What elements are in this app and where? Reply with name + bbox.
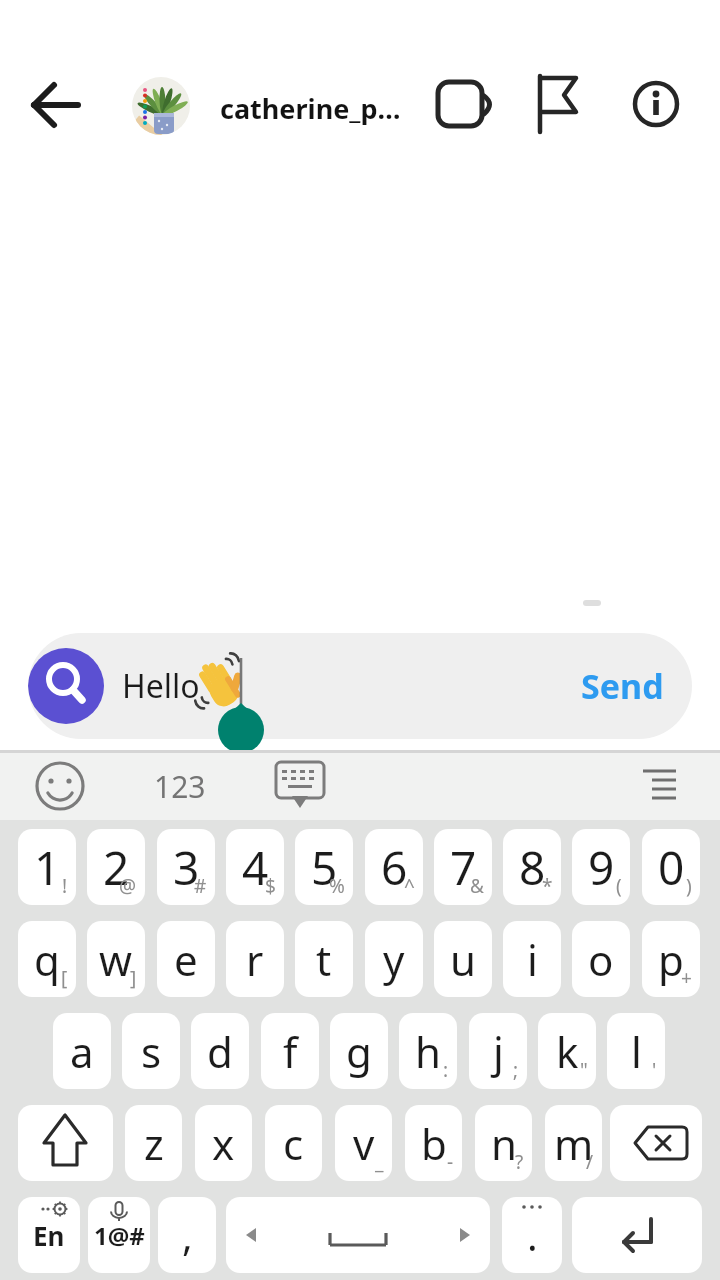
staticText: t [316,931,332,988]
staticText: s [141,1023,162,1080]
button[interactable]: b [405,1105,462,1181]
staticText: g [346,1023,372,1080]
staticText: w [99,931,133,988]
button[interactable]: Hello [28,633,692,739]
staticText: + [681,965,692,991]
button[interactable]: s [122,1013,180,1089]
button[interactable]: En [18,1197,80,1273]
staticText: ! [62,873,68,899]
button[interactable] [626,756,686,816]
button[interactable]: 5 [295,829,353,905]
staticText: b [421,1115,447,1172]
staticText: 3 [173,836,200,899]
staticText: ; [513,1057,519,1083]
staticText: 2 [103,836,130,899]
button[interactable] [32,756,88,816]
staticText: " [580,1057,588,1083]
staticText: 0 [658,836,685,899]
button[interactable] [18,1105,113,1181]
button[interactable]: . [502,1197,562,1273]
button[interactable] [572,1197,702,1273]
button[interactable] [268,756,332,816]
button[interactable]: q [18,921,76,997]
staticText: - [447,1149,454,1175]
button[interactable]: d [191,1013,249,1089]
staticText: En [33,1218,65,1253]
button[interactable]: e [157,921,215,997]
button[interactable]: u [434,921,492,997]
staticText: 1 [34,836,61,899]
staticText: y [383,931,405,988]
staticText: x [212,1115,235,1172]
button[interactable] [28,648,104,724]
button[interactable]: o [572,921,630,997]
button[interactable]: 1@# [88,1197,150,1273]
button[interactable]: f [261,1013,319,1089]
button[interactable]: r [226,921,284,997]
button[interactable]: , [158,1197,216,1273]
button[interactable]: c [265,1105,322,1181]
staticText: 8 [519,836,546,899]
button[interactable]: x [195,1105,252,1181]
staticText: h [415,1023,441,1080]
staticText: [ [61,965,68,991]
button[interactable]: 4 [226,829,284,905]
button[interactable]: y [365,921,423,997]
button[interactable]: 6 [365,829,423,905]
staticText: n [491,1115,517,1172]
staticText: 5 [311,836,338,899]
staticText: / [586,1149,594,1175]
staticText: ( [616,873,622,899]
staticText: _ [375,1149,384,1175]
button[interactable]: h [399,1013,457,1089]
staticText: . [527,1208,538,1262]
button[interactable] [226,1197,490,1273]
staticText: , [182,1208,193,1262]
button[interactable] [630,76,686,132]
staticText: l [631,1023,642,1080]
button[interactable] [430,74,504,138]
button[interactable]: g [330,1013,388,1089]
staticText: ) [686,873,692,899]
staticText: catherine_p… [220,90,401,127]
staticText: c [283,1115,304,1172]
button[interactable]: k [538,1013,596,1089]
staticText: ] [130,965,137,991]
staticText: @ [119,873,137,899]
button[interactable]: a [53,1013,111,1089]
button[interactable]: 3 [157,829,215,905]
button[interactable] [526,66,590,138]
staticText: q [34,931,60,988]
staticText: 123 [154,766,206,807]
button[interactable]: 7 [434,829,492,905]
button[interactable]: n [475,1105,532,1181]
button[interactable]: 123 [148,756,212,816]
button[interactable]: 8 [503,829,561,905]
button[interactable]: 2 [87,829,145,905]
staticText: u [450,931,476,988]
button[interactable]: 1 [18,829,76,905]
staticText: i [527,931,538,988]
staticText: v [353,1115,375,1172]
button[interactable]: 0 [642,829,700,905]
button[interactable]: 9 [572,829,630,905]
button[interactable]: m [545,1105,602,1181]
staticText: r [246,931,264,988]
button[interactable]: Send [581,663,664,709]
button[interactable] [610,1105,702,1181]
button[interactable]: l [607,1013,665,1089]
button[interactable]: z [125,1105,182,1181]
button[interactable]: t [295,921,353,997]
button[interactable] [132,77,190,135]
button[interactable]: v [335,1105,392,1181]
button[interactable]: w [87,921,145,997]
staticText: ^ [404,873,415,899]
button[interactable]: i [503,921,561,997]
button[interactable]: p [642,921,700,997]
staticText: j [493,1023,504,1080]
staticText: Hello [122,664,200,708]
button[interactable]: j [469,1013,527,1089]
staticText: 6 [381,836,408,899]
staticText: 1@# [94,1219,145,1252]
button[interactable] [24,76,88,136]
